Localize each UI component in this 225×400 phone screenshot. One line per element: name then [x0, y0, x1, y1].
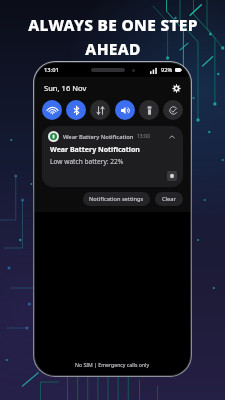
- staticText: 92%: [161, 66, 173, 74]
- button[interactable]: Settings: [169, 81, 183, 95]
- button[interactable]: Wear Battery Notification: [42, 126, 183, 187]
- staticText: Wear Battery Notification: [50, 145, 140, 155]
- staticText: ALWAYS BE ONE STEP: [28, 14, 198, 35]
- button[interactable]: Clear: [155, 192, 183, 206]
- button[interactable]: Watch: [167, 171, 177, 181]
- button[interactable]: Wi-Fi: [42, 100, 62, 120]
- button[interactable]: Mobile data: [90, 100, 110, 120]
- staticText: Notification settings: [89, 195, 144, 203]
- button[interactable]: Notification settings: [83, 192, 150, 206]
- button[interactable]: Auto rotate: [163, 100, 183, 120]
- staticText: Wear Battery Notification: [63, 133, 134, 141]
- button[interactable]: Collapse: [167, 132, 177, 142]
- button[interactable]: Flashlight: [139, 100, 159, 120]
- staticText: Sun, 16 Nov: [44, 83, 87, 93]
- staticText: Low watch battery: 22%: [50, 157, 124, 166]
- staticText: No SIM | Emergency calls only: [75, 361, 150, 368]
- staticText: Clear: [162, 195, 176, 203]
- staticText: 13:01: [44, 66, 59, 74]
- button[interactable]: Bluetooth: [66, 100, 86, 120]
- button[interactable]: Sound: [115, 100, 135, 120]
- staticText: AHEAD: [85, 38, 141, 59]
- staticText: 13:00: [137, 133, 150, 140]
